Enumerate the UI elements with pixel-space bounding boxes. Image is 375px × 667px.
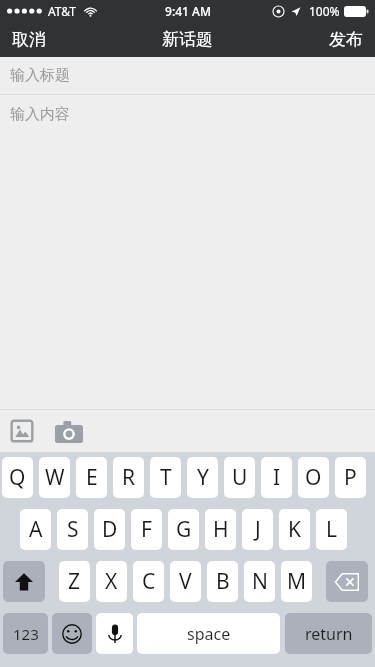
staticText: W: [45, 463, 65, 492]
button[interactable]: return: [285, 613, 372, 654]
button[interactable]: V: [170, 561, 201, 602]
staticText: D: [102, 515, 118, 544]
button[interactable]: L: [316, 509, 347, 550]
staticText: C: [142, 567, 156, 596]
button[interactable]: K: [279, 509, 310, 550]
staticText: L: [326, 515, 338, 544]
button[interactable]: X: [96, 561, 127, 602]
staticText: return: [305, 623, 353, 645]
staticText: P: [344, 463, 357, 492]
staticText: N: [252, 567, 268, 596]
button[interactable]: M: [281, 561, 312, 602]
staticText: 取消: [12, 29, 46, 50]
button[interactable]: 发布: [317, 22, 375, 57]
staticText: 输入标题: [10, 66, 70, 85]
staticText: A: [29, 515, 43, 544]
staticText: X: [105, 567, 118, 596]
staticText: J: [255, 515, 261, 544]
staticText: 新话题: [162, 29, 213, 50]
staticText: T: [160, 463, 172, 492]
button[interactable]: O: [298, 457, 329, 498]
button[interactable]: T: [150, 457, 181, 498]
staticText: Q: [9, 463, 26, 492]
staticText: V: [179, 567, 192, 596]
button[interactable]: I: [261, 457, 292, 498]
button[interactable]: 取消: [0, 22, 58, 57]
button[interactable]: N: [244, 561, 275, 602]
staticText: Z: [68, 567, 81, 596]
button[interactable]: Shift: [3, 561, 45, 602]
staticText: I: [273, 463, 281, 492]
button[interactable]: J: [242, 509, 273, 550]
button[interactable]: A: [20, 509, 51, 550]
staticText: S: [67, 515, 79, 544]
button[interactable]: B: [207, 561, 238, 602]
staticText: 输入内容: [10, 105, 70, 124]
staticText: 9:41 AM: [165, 3, 211, 19]
button[interactable]: Y: [187, 457, 218, 498]
button[interactable]: 输入内容: [0, 95, 375, 409]
button[interactable]: S: [57, 509, 88, 550]
staticText: 发布: [329, 29, 363, 50]
staticText: U: [232, 463, 248, 492]
staticText: space: [187, 623, 231, 645]
button[interactable]: C: [133, 561, 164, 602]
button[interactable]: 输入标题: [0, 57, 375, 94]
staticText: H: [213, 515, 229, 544]
staticText: R: [122, 463, 136, 492]
staticText: O: [305, 463, 322, 492]
button[interactable]: Take photo: [55, 420, 83, 443]
button[interactable]: H: [205, 509, 236, 550]
staticText: G: [176, 515, 192, 544]
staticText: AT&T: [48, 3, 76, 19]
button[interactable]: P: [335, 457, 366, 498]
staticText: E: [86, 463, 98, 492]
button[interactable]: Z: [59, 561, 90, 602]
button[interactable]: space: [137, 613, 280, 654]
staticText: F: [141, 515, 152, 544]
button[interactable]: E: [76, 457, 107, 498]
button[interactable]: Emoji: [52, 613, 92, 654]
button[interactable]: 123: [3, 613, 48, 654]
staticText: Y: [197, 463, 209, 492]
staticText: 123: [13, 624, 39, 644]
staticText: 100%: [309, 3, 340, 19]
button[interactable]: G: [168, 509, 199, 550]
button[interactable]: Dictation: [96, 613, 133, 654]
button[interactable]: Backspace: [326, 561, 368, 602]
staticText: M: [287, 567, 307, 596]
button[interactable]: Add photo: [10, 419, 34, 443]
button[interactable]: Q: [2, 457, 33, 498]
button[interactable]: D: [94, 509, 125, 550]
button[interactable]: F: [131, 509, 162, 550]
staticText: B: [216, 567, 230, 596]
button[interactable]: R: [113, 457, 144, 498]
staticText: K: [288, 515, 301, 544]
button[interactable]: W: [39, 457, 70, 498]
button[interactable]: U: [224, 457, 255, 498]
